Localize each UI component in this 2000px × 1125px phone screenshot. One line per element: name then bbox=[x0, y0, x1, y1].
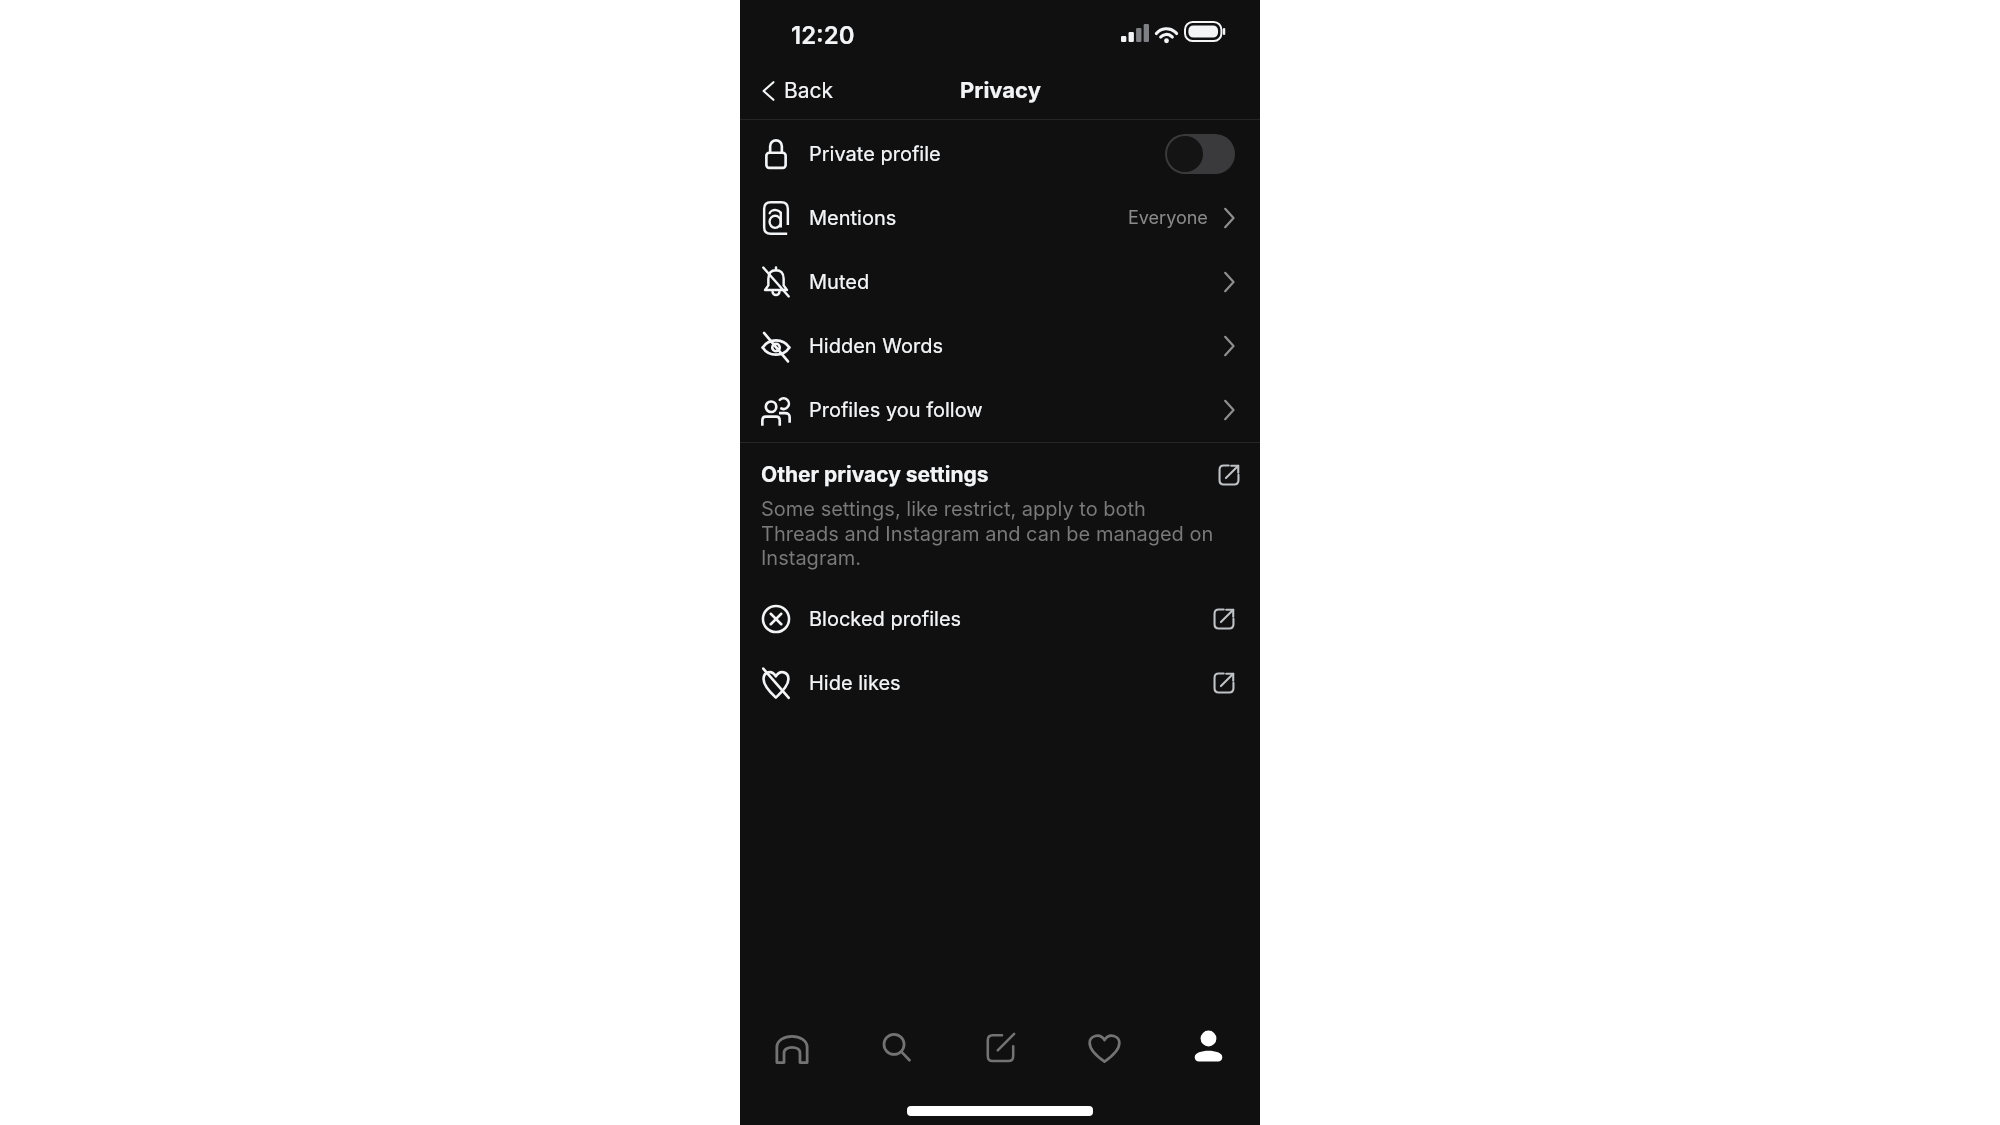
button[interactable]: Hidden Words bbox=[740, 314, 1260, 378]
staticText: Hidden Words bbox=[809, 334, 943, 358]
button[interactable]: Blocked profiles bbox=[740, 587, 1260, 651]
staticText: Hide likes bbox=[809, 671, 901, 695]
button[interactable]: Profiles you follow bbox=[740, 378, 1260, 442]
staticText: Other privacy settings bbox=[761, 462, 989, 487]
button[interactable]: Private profile bbox=[740, 122, 1260, 186]
staticText: Mentions bbox=[809, 206, 897, 230]
button[interactable]: Muted bbox=[740, 250, 1260, 314]
button[interactable]: Other privacy settings bbox=[740, 456, 1260, 493]
staticText: Profiles you follow bbox=[809, 398, 983, 422]
button[interactable]: Profile bbox=[1156, 1011, 1260, 1083]
button[interactable]: Mentions bbox=[740, 186, 1260, 250]
staticText: Privacy bbox=[960, 77, 1041, 104]
button[interactable]: Home bbox=[740, 1011, 844, 1083]
button[interactable]: Private profile toggle bbox=[1165, 134, 1235, 174]
staticText: Everyone bbox=[1128, 207, 1208, 229]
staticText: Some settings, like restrict, apply to b… bbox=[761, 497, 1223, 569]
button[interactable]: Back bbox=[754, 70, 842, 111]
staticText: Private profile bbox=[809, 142, 941, 166]
staticText: 12:20 bbox=[791, 21, 855, 50]
button[interactable]: Activity bbox=[1052, 1011, 1156, 1083]
button[interactable]: New thread bbox=[948, 1011, 1052, 1083]
button[interactable]: Search bbox=[844, 1011, 948, 1083]
staticText: Back bbox=[784, 78, 834, 103]
staticText: Muted bbox=[809, 270, 870, 294]
button[interactable]: Hide likes bbox=[740, 651, 1260, 715]
staticText: Blocked profiles bbox=[809, 607, 962, 631]
